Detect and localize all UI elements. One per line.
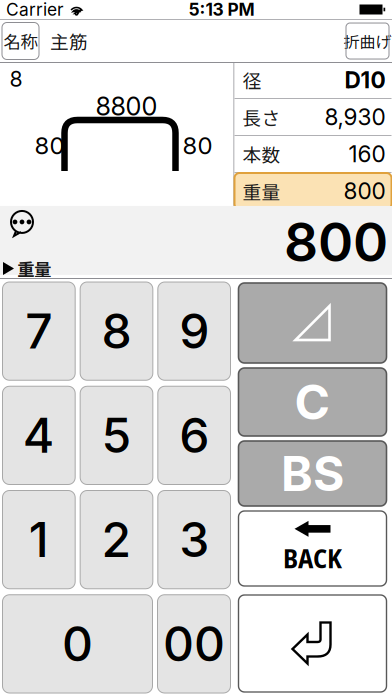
button[interactable]: 6 [158, 386, 230, 484]
button[interactable]: 5 [80, 386, 153, 484]
button[interactable]: Bend angle [238, 283, 386, 363]
staticText: BACK [283, 540, 342, 576]
button[interactable]: 折曲げ [346, 23, 389, 59]
staticText: 径 [242, 66, 261, 93]
staticText: 1 [29, 511, 49, 569]
staticText: 7 [25, 302, 52, 360]
staticText: C [294, 373, 330, 431]
button[interactable]: Back [238, 511, 386, 586]
staticText: BS [281, 444, 344, 503]
staticText: 本数 [242, 140, 280, 167]
staticText: 折曲げ [343, 29, 391, 53]
staticText: 名称 [3, 28, 37, 54]
staticText: 5 [101, 406, 131, 464]
button[interactable]: 00 [157, 595, 230, 693]
button[interactable]: 4 [2, 386, 75, 484]
staticText: 160 [348, 140, 385, 168]
staticText: 2 [101, 511, 131, 569]
staticText: 8 [9, 66, 22, 92]
button[interactable]: 2 [80, 490, 153, 589]
staticText: 重量 [242, 177, 280, 204]
staticText: 0 [62, 615, 93, 673]
staticText: D10 [344, 66, 385, 94]
button[interactable]: 名称 [2, 22, 39, 59]
button[interactable]: 0 [2, 595, 152, 693]
button[interactable]: 3 [158, 490, 230, 589]
staticText: 3 [179, 511, 209, 569]
staticText: 8 [101, 302, 131, 360]
staticText: 6 [179, 406, 209, 464]
button[interactable]: 9 [158, 282, 230, 380]
button[interactable]: 7 [2, 282, 75, 380]
staticText: Carrier [6, 0, 64, 20]
button[interactable]: 1 [2, 490, 75, 589]
button[interactable]: Enter [238, 595, 386, 692]
staticText: 00 [163, 615, 225, 673]
staticText: 主筋 [50, 27, 88, 54]
staticText: 800 [343, 177, 385, 205]
staticText: 8800 [95, 91, 157, 122]
button[interactable]: 8 [80, 282, 153, 380]
staticText: 800 [284, 210, 388, 274]
button[interactable]: BS [238, 441, 386, 506]
staticText: 8,930 [324, 103, 385, 131]
staticText: 5:13 PM [188, 0, 254, 20]
staticText: 重量 [17, 256, 51, 281]
staticText: 80 [182, 131, 212, 160]
staticText: 4 [23, 406, 55, 464]
staticText: 80 [34, 131, 64, 160]
button[interactable]: C [238, 368, 386, 436]
staticText: 9 [179, 302, 209, 360]
staticText: 長さ [242, 103, 280, 130]
